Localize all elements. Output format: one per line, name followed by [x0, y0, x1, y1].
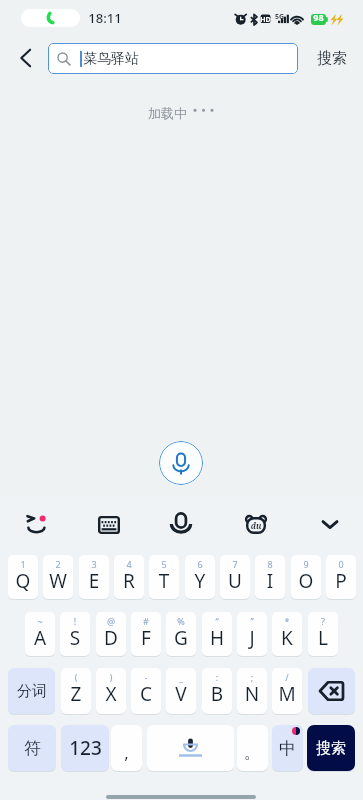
staticText: ! [60, 615, 90, 627]
staticText: ; [237, 671, 267, 683]
staticText: 中 [279, 738, 296, 759]
button[interactable]: ! [60, 612, 90, 656]
staticText: 9 [291, 558, 321, 570]
button[interactable]: 符 [8, 725, 56, 771]
button[interactable]: Voice input [159, 441, 203, 485]
staticText: 4 [114, 558, 144, 570]
button[interactable]: ; [237, 668, 267, 714]
staticText: D [96, 625, 126, 651]
button[interactable]: Space [147, 725, 234, 771]
staticText: L [308, 625, 338, 651]
staticText: A [25, 625, 55, 651]
button[interactable]: 4 [114, 555, 144, 599]
staticText: I [255, 568, 285, 594]
button[interactable]: 分词 [8, 668, 55, 714]
staticText: % [166, 615, 196, 627]
staticText: T [149, 568, 179, 594]
button[interactable]: Baidu input [237, 505, 275, 543]
staticText: 123 [69, 735, 102, 761]
staticText: 菜鸟驿站 [83, 50, 139, 68]
button[interactable]: Backspace [308, 668, 355, 714]
button[interactable]: 123 [61, 725, 109, 771]
button[interactable]: 搜索 [307, 725, 355, 771]
button[interactable]: Voice input [163, 505, 199, 541]
button[interactable]: 3 [79, 555, 109, 599]
button[interactable]: % [166, 612, 196, 656]
staticText: 5 [149, 558, 179, 570]
button[interactable]: / [272, 668, 302, 714]
button[interactable]: ) [96, 668, 126, 714]
staticText: W [43, 568, 73, 594]
staticText: C [131, 681, 161, 707]
button[interactable]: ” [237, 612, 267, 656]
staticText: 7 [220, 558, 250, 570]
button[interactable]: 1 [8, 555, 38, 599]
button[interactable]: : [202, 668, 232, 714]
button[interactable]: Keyboard layout [90, 506, 128, 544]
staticText: 6 [185, 558, 215, 570]
staticText: 。 [244, 742, 261, 763]
staticText: @ [96, 615, 126, 627]
button[interactable]: 菜鸟驿站 [48, 43, 298, 74]
button[interactable]: Emoji [18, 506, 54, 542]
staticText: 5G [274, 12, 285, 22]
button[interactable]: 2 [43, 555, 73, 599]
staticText: V [166, 681, 196, 707]
button[interactable]: ( [61, 668, 91, 714]
staticText: # [131, 615, 161, 627]
button[interactable]: 9 [291, 555, 321, 599]
button[interactable]: _ [166, 668, 196, 714]
staticText: du [246, 520, 266, 531]
staticText: X [96, 681, 126, 707]
staticText: 分词 [17, 682, 47, 701]
staticText: R [114, 568, 144, 594]
staticText: 1 [8, 558, 38, 570]
button[interactable]: , [111, 725, 142, 771]
staticText: 3 [79, 558, 109, 570]
staticText: 2 [43, 558, 73, 570]
button[interactable]: 0 [326, 555, 356, 599]
staticText: N [237, 681, 267, 707]
staticText: 加载中 [148, 105, 187, 121]
staticText: Q [8, 568, 38, 594]
staticText: 0 [326, 558, 356, 570]
button[interactable]: 5 [149, 555, 179, 599]
staticText: 18:11 [88, 9, 122, 27]
staticText: ) [96, 671, 126, 683]
button[interactable]: @ [96, 612, 126, 656]
staticText: H [202, 625, 232, 651]
button[interactable]: # [131, 612, 161, 656]
button[interactable]: 中 [272, 725, 303, 771]
button[interactable]: 搜索 [309, 43, 355, 74]
staticText: K [272, 625, 302, 651]
staticText: S [60, 625, 90, 651]
button[interactable]: * [272, 612, 302, 656]
staticText: E [79, 568, 109, 594]
button[interactable]: “ [202, 612, 232, 656]
button[interactable]: ? [308, 612, 338, 656]
staticText: F [131, 625, 161, 651]
staticText: / [272, 671, 302, 683]
staticText: O [291, 568, 321, 594]
staticText: 8 [255, 558, 285, 570]
staticText: HD [259, 15, 272, 25]
staticText: B [202, 681, 232, 707]
staticText: ” [237, 615, 267, 627]
staticText: G [166, 625, 196, 651]
button[interactable]: 7 [220, 555, 250, 599]
staticText: * [272, 615, 302, 627]
staticText: _ [166, 671, 196, 683]
button[interactable]: Hide keyboard [312, 506, 348, 542]
button[interactable]: - [131, 668, 161, 714]
staticText: J [237, 625, 267, 651]
button[interactable]: Back [8, 42, 42, 74]
button[interactable]: ~ [25, 612, 55, 656]
staticText: Z [61, 681, 91, 707]
button[interactable]: 6 [185, 555, 215, 599]
button[interactable]: 。 [237, 725, 268, 771]
staticText: Y [185, 568, 215, 594]
staticText: 搜索 [316, 739, 346, 758]
staticText: 98 [311, 11, 326, 23]
button[interactable]: 8 [255, 555, 285, 599]
staticText: - [131, 671, 161, 683]
